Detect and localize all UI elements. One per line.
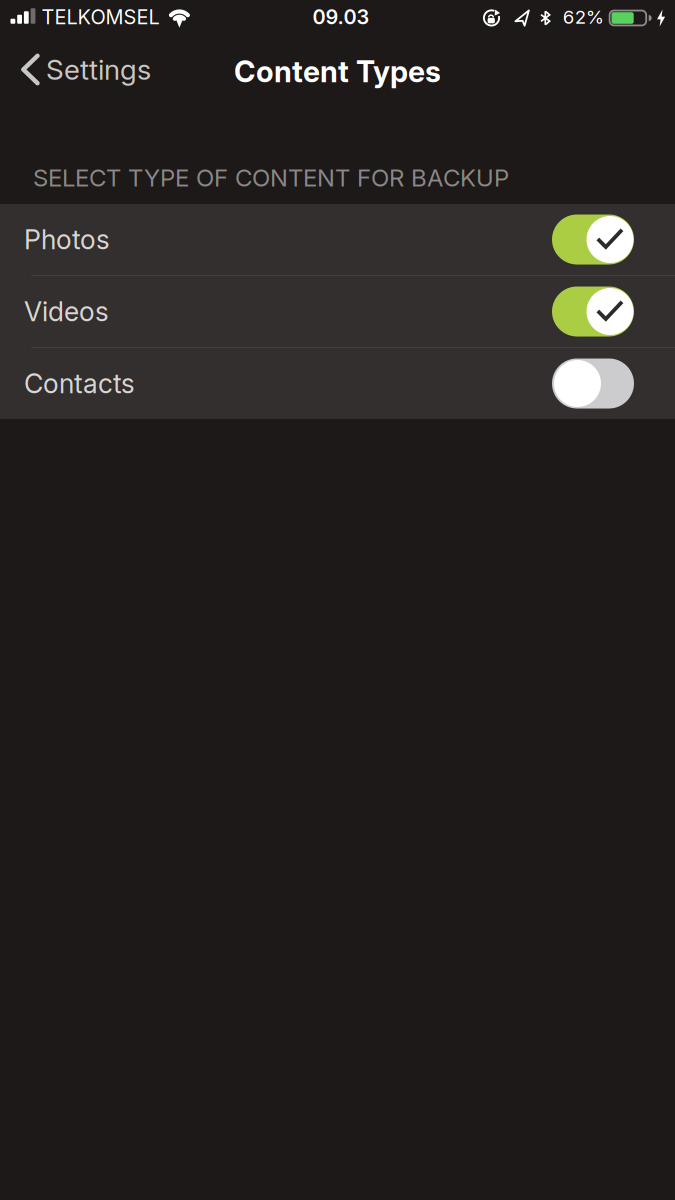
staticText: Content Types bbox=[234, 54, 441, 89]
button[interactable]: Contacts backup off bbox=[552, 358, 634, 408]
staticText: Contacts bbox=[24, 368, 135, 399]
button[interactable]: Videos backup on bbox=[552, 286, 634, 336]
button[interactable]: Photos backup on bbox=[552, 214, 634, 264]
staticText: TELKOMSEL bbox=[41, 5, 159, 29]
staticText: SELECT TYPE OF CONTENT FOR BACKUP bbox=[33, 164, 509, 192]
button[interactable]: Back to Settings bbox=[0, 53, 151, 86]
staticText: 09.03 bbox=[312, 5, 369, 29]
staticText: Videos bbox=[24, 296, 109, 327]
staticText: Settings bbox=[46, 53, 151, 86]
staticText: 62% bbox=[563, 6, 604, 28]
staticText: Photos bbox=[24, 224, 110, 255]
